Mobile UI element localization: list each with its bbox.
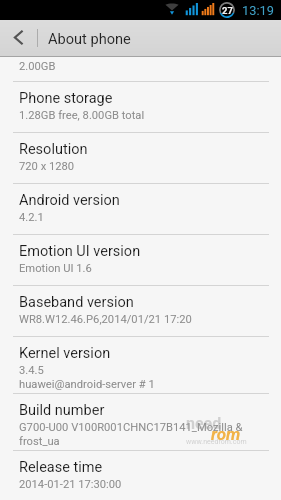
staticText: huawei@android-server # 1 xyxy=(19,378,155,391)
button[interactable]: Baseband version xyxy=(0,285,281,336)
staticText: 720 x 1280 xyxy=(19,160,75,173)
staticText: Kernel version xyxy=(19,345,111,362)
button[interactable]: Resolution xyxy=(0,132,281,183)
button[interactable]: Build number xyxy=(0,393,281,450)
button[interactable]: Back xyxy=(0,20,37,57)
staticText: 13:19 xyxy=(242,3,274,18)
staticText: Phone storage xyxy=(19,90,113,107)
staticText: frost_ua xyxy=(19,435,60,448)
button[interactable]: Android version xyxy=(0,183,281,234)
staticText: rom xyxy=(211,424,241,444)
button[interactable]: Emotion UI version xyxy=(0,234,281,285)
staticText: About phone xyxy=(48,30,131,47)
staticText: Android version xyxy=(19,192,120,209)
staticText: Build number xyxy=(19,402,105,419)
staticText: WR8.W12.46.P6,2014/01/21 17:20 xyxy=(19,313,192,326)
button[interactable]: Kernel version xyxy=(0,336,281,393)
staticText: G700-U00 V100R001CHNC17B141_Mozilla & xyxy=(19,421,243,434)
staticText: Emotion UI 1.6 xyxy=(19,262,92,275)
button[interactable]: Release time xyxy=(0,450,281,500)
staticText: 1.28GB free, 8.00GB total xyxy=(19,109,145,122)
staticText: www.needrom.com xyxy=(186,438,247,446)
staticText: Release time xyxy=(19,459,103,476)
staticText: 27 xyxy=(222,5,233,16)
staticText: Emotion UI version xyxy=(19,243,141,260)
button[interactable]: Phone storage xyxy=(0,81,281,132)
staticText: 4.2.1 xyxy=(19,211,44,224)
staticText: 2.00GB xyxy=(19,60,56,73)
staticText: need xyxy=(186,414,222,433)
staticText: Resolution xyxy=(19,141,88,158)
staticText: 2014-01-21 17:30:00 xyxy=(19,478,122,491)
staticText: 3.4.5 xyxy=(19,364,44,377)
staticText: Baseband version xyxy=(19,294,134,311)
